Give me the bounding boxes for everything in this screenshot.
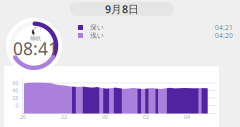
staticText: 08:41	[13, 37, 58, 60]
staticText: 0	[15, 102, 18, 109]
staticText: 深い	[90, 23, 104, 32]
staticText: 9月8日	[105, 2, 139, 16]
staticText: 浅い	[90, 31, 104, 40]
staticText: 02	[143, 113, 149, 121]
staticText: 04:20	[215, 31, 233, 40]
staticText: 04	[184, 113, 190, 121]
staticText: 20	[20, 113, 26, 121]
staticText: 20	[12, 94, 18, 102]
button[interactable]: 9月8日	[70, 2, 174, 16]
staticText: 60	[12, 79, 18, 87]
staticText: 40	[12, 87, 18, 94]
staticText: 睡眠	[30, 35, 40, 42]
staticText: 22	[61, 113, 67, 121]
staticText: 00	[102, 113, 108, 121]
staticText: 04:21	[215, 23, 233, 32]
